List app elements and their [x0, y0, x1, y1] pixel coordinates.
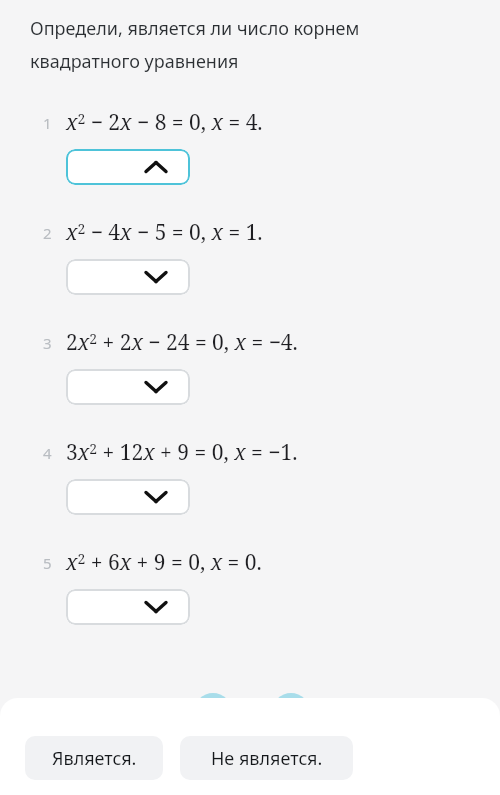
staticText: Определи, является ли число корнем квадр… [30, 16, 360, 73]
button[interactable]: Свернуть ответ [66, 149, 190, 185]
staticText: 3x2 + 12x + 9 = 0, x = −1. [66, 438, 298, 467]
staticText: 2x2 + 2x − 24 = 0, x = −4. [66, 328, 298, 357]
button[interactable]: Выбрать ответ [66, 589, 190, 625]
staticText: 2 [43, 223, 52, 243]
button[interactable]: Выбрать ответ [66, 259, 190, 295]
staticText: x2 + 6x + 9 = 0, x = 0. [66, 548, 262, 577]
staticText: 1 [43, 113, 52, 133]
button[interactable]: Является. [25, 736, 163, 780]
staticText: 5 [43, 553, 52, 573]
staticText: 4 [43, 443, 52, 463]
staticText: 3 [43, 333, 52, 353]
button[interactable]: Выбрать ответ [66, 369, 190, 405]
staticText: x2 − 2x − 8 = 0, x = 4. [66, 108, 263, 137]
button[interactable]: Не является. [180, 736, 353, 780]
staticText: x2 − 4x − 5 = 0, x = 1. [66, 218, 263, 247]
button[interactable]: Выбрать ответ [66, 479, 190, 515]
staticText: Не является. [211, 746, 323, 771]
staticText: Является. [52, 746, 137, 771]
